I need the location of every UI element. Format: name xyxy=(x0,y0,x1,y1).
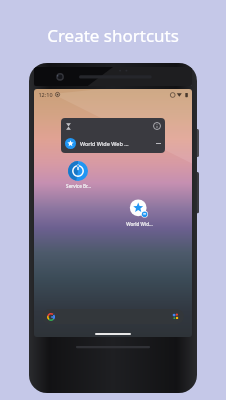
button[interactable]: World Wide Web shortcut xyxy=(117,199,161,227)
staticText: Create shortcuts xyxy=(47,24,179,47)
staticText: World Wide Web … xyxy=(80,140,129,147)
other: Google Assistant xyxy=(172,313,179,320)
other: Loading xyxy=(65,123,72,130)
button[interactable]: Widget info xyxy=(153,122,161,130)
staticText: 12:10 xyxy=(38,91,53,98)
staticText: World Wid… xyxy=(126,221,153,227)
button[interactable]: Service Browser shortcut xyxy=(56,161,100,189)
other: Google Search xyxy=(47,313,55,321)
button[interactable]: Google Search xyxy=(42,309,184,324)
staticText: Service Br… xyxy=(66,183,91,189)
button[interactable]: Loading xyxy=(61,118,165,153)
